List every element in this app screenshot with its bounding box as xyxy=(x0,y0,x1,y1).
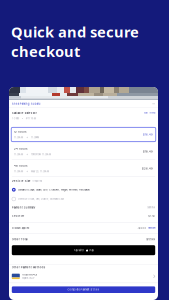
staticText: Other Payment Methods xyxy=(12,266,45,269)
button[interactable]: 12 hours xyxy=(9,126,158,143)
staticText: Payment Summary xyxy=(12,206,35,209)
staticText: Service Fee xyxy=(12,215,24,218)
button[interactable]: Standard (Coupe, Sedan, SUV, Crossover, … xyxy=(9,185,158,194)
button[interactable]: Pay with xyxy=(12,245,155,255)
staticText: $17.99 xyxy=(146,238,155,241)
staticText: (required) xyxy=(32,180,42,182)
staticText: Oversize (Truck, Van, Dually, Extended C… xyxy=(18,198,64,200)
staticText: 11:30AM → Tomorrow 11:30AM xyxy=(14,153,51,156)
staticText: Standard (Coupe, Sedan, SUV, Crossover, … xyxy=(18,188,90,191)
staticText: ••• xyxy=(152,102,155,105)
staticText: Available Rates For xyxy=(12,111,37,115)
staticText: Expires 05/27 xyxy=(22,277,34,279)
button[interactable]: Complete Payment $17.99 xyxy=(12,286,155,293)
staticText: 11:30AM → May 23, 11:30AM xyxy=(14,170,49,173)
staticText: $1.50 xyxy=(148,215,155,218)
button[interactable]: 48 hours xyxy=(9,160,158,177)
staticText: Order Total xyxy=(12,238,28,241)
staticText: Visa ••••7421 xyxy=(22,273,37,276)
staticText: $18.49 xyxy=(143,150,153,153)
staticText: 11:30AM → 11:30PM xyxy=(14,136,39,139)
staticText: Vehicle Size xyxy=(12,179,31,183)
staticText: Remove xyxy=(148,227,155,229)
button[interactable]: Oversize (Truck, Van, Dually, Extended C… xyxy=(9,194,158,203)
staticText: Discount applied xyxy=(12,227,29,229)
staticText: 12 hours xyxy=(14,130,26,133)
staticText: Pay xyxy=(89,249,93,252)
staticText: $26.49 xyxy=(142,167,153,170)
staticText: Complete Payment $17.99 xyxy=(67,288,99,291)
button[interactable]: Visa ••••7421 xyxy=(9,270,158,283)
staticText: 1 Code • 4/11 10:56 xyxy=(12,117,36,120)
staticText: 24 hours xyxy=(14,147,27,150)
staticText: Subtotal xyxy=(147,206,155,209)
button[interactable]: 24 hours xyxy=(9,143,158,160)
staticText: Quick and secure checkout xyxy=(11,22,139,61)
staticText: -$0.00 xyxy=(137,227,146,229)
staticText: Edit Times xyxy=(144,111,155,114)
staticText: Pay with xyxy=(74,249,85,252)
staticText: 48 hours xyxy=(14,164,27,167)
staticText: $16.49 xyxy=(143,133,153,136)
staticText: Shea Parking Subaru xyxy=(12,102,41,105)
